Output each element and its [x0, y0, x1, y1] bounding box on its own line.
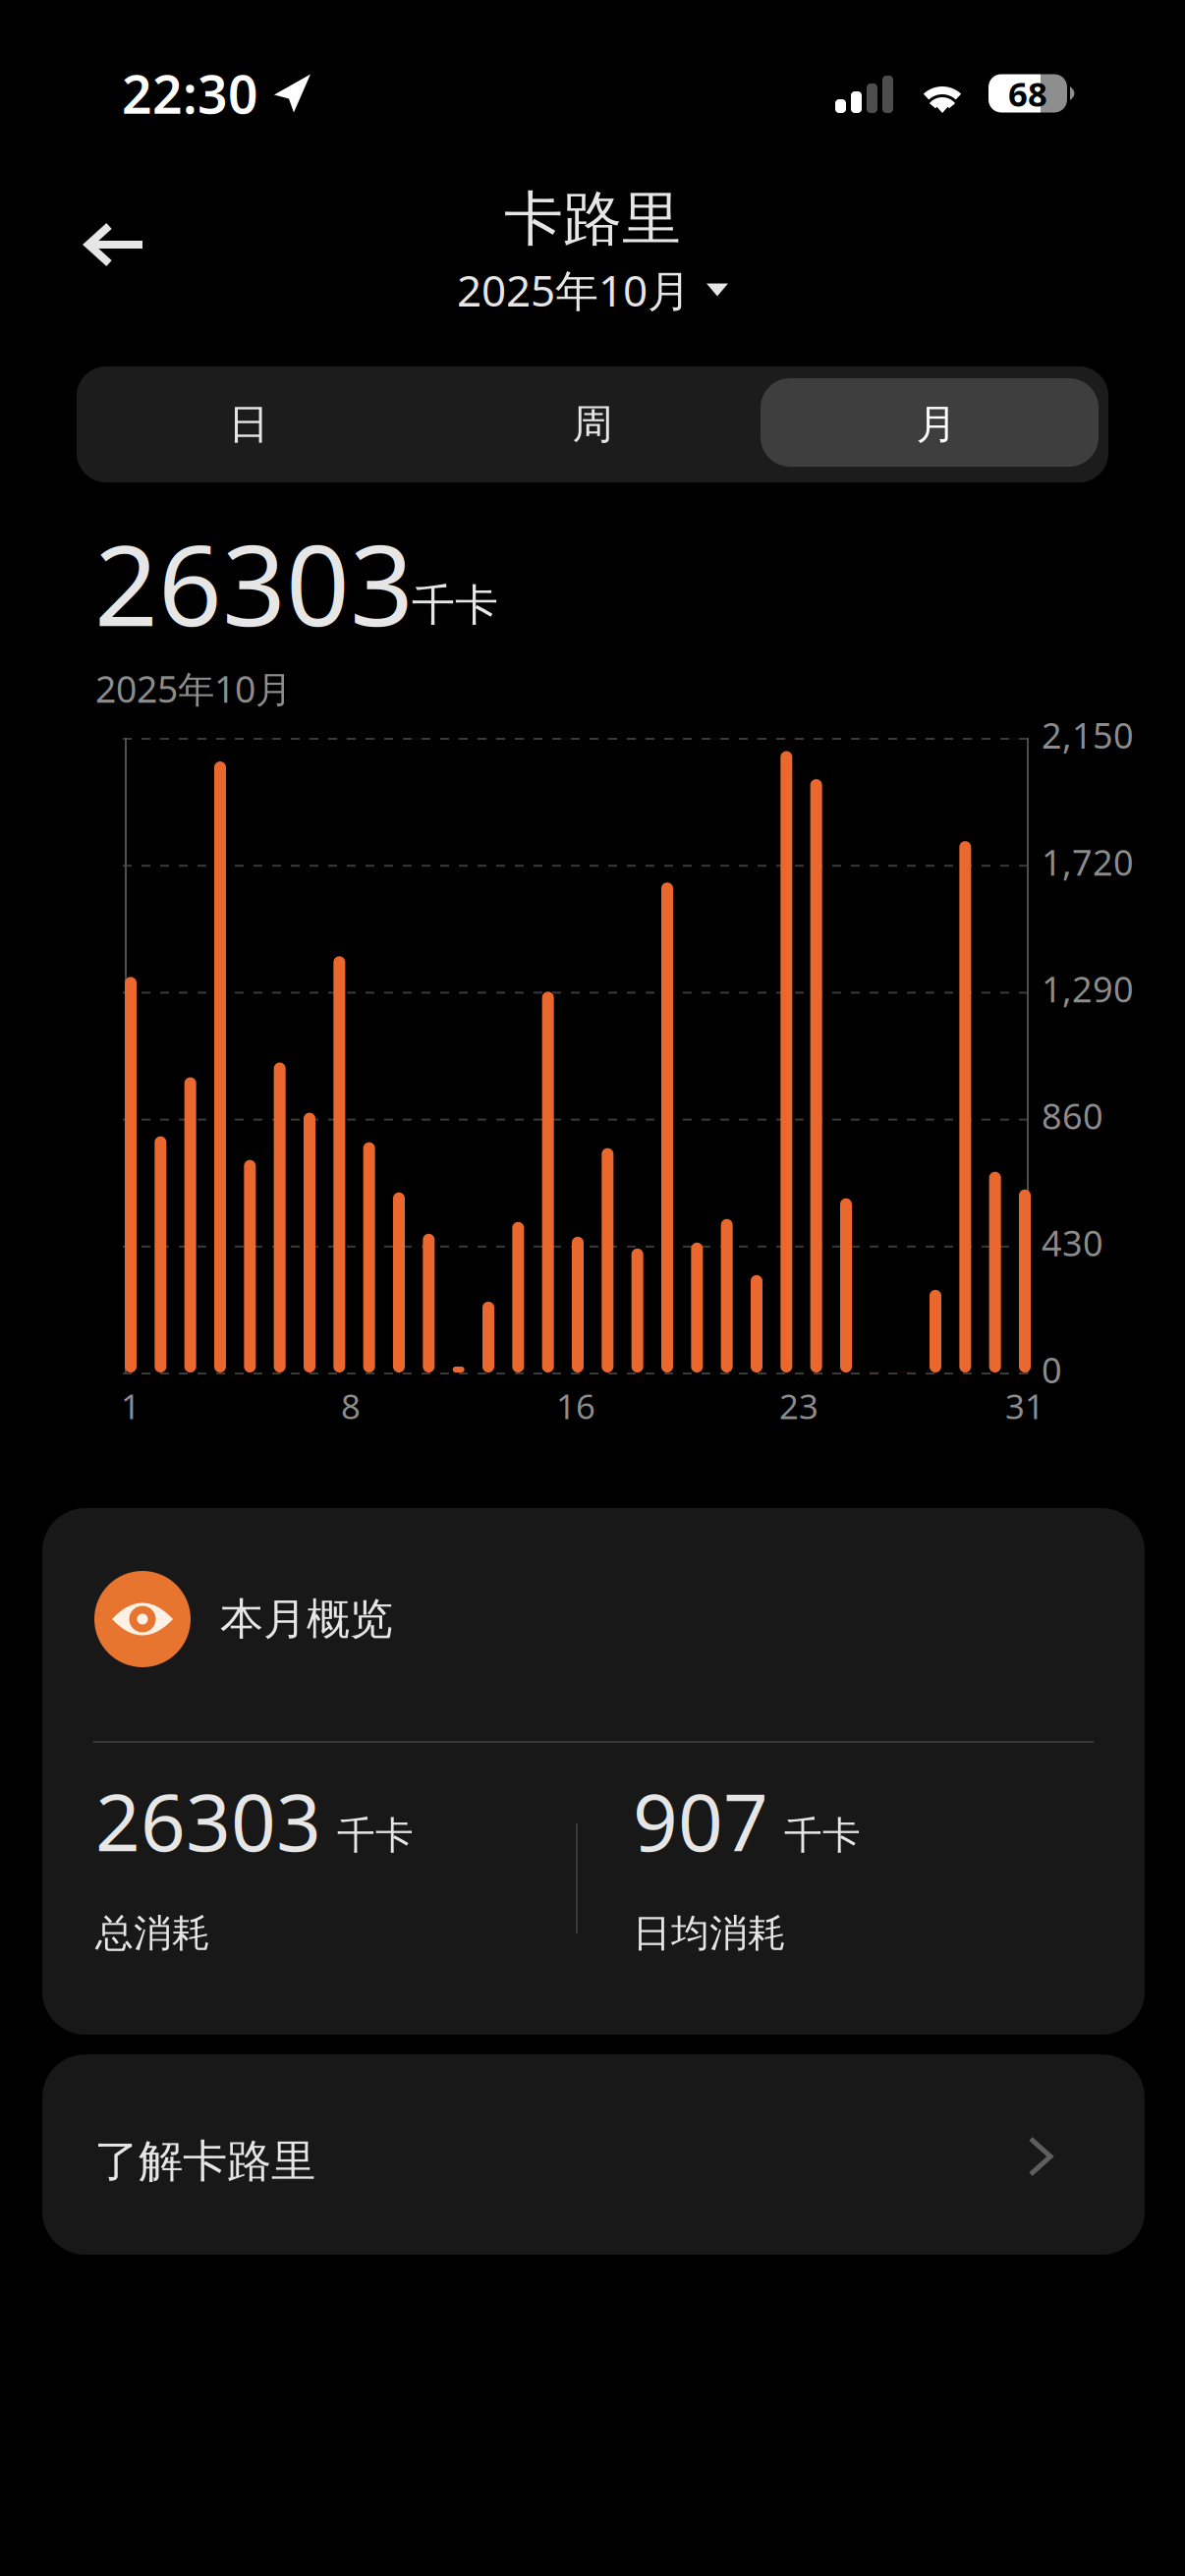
staticText: 16: [556, 1383, 595, 1428]
button[interactable]: 月: [764, 366, 1108, 482]
staticText: 907: [633, 1768, 768, 1873]
staticText: 1: [121, 1383, 141, 1428]
staticText: 2025年10月: [457, 261, 691, 319]
staticText: 1,720: [1042, 838, 1134, 885]
staticText: 千卡: [337, 1812, 414, 1859]
button[interactable]: 了解卡路里: [42, 2054, 1145, 2255]
button[interactable]: Back: [84, 223, 146, 266]
staticText: 总消耗: [95, 1910, 210, 1957]
staticText: 31: [1005, 1383, 1044, 1428]
staticText: 2,150: [1042, 711, 1134, 758]
staticText: 周: [572, 399, 613, 449]
staticText: 26303: [95, 1768, 321, 1873]
staticText: 68: [1008, 71, 1047, 116]
staticText: 月: [916, 399, 957, 449]
button[interactable]: 日: [77, 366, 421, 482]
staticText: 本月概览: [220, 1593, 393, 1646]
staticText: 日均消耗: [633, 1910, 786, 1957]
staticText: 2025年10月: [95, 664, 292, 713]
staticText: 了解卡路里: [94, 2134, 315, 2189]
staticText: 8: [341, 1383, 361, 1428]
staticText: 1,290: [1042, 965, 1134, 1012]
staticText: 0: [1042, 1346, 1062, 1393]
staticText: 26303: [94, 509, 414, 657]
staticText: 23: [779, 1383, 818, 1428]
staticText: 22:30: [122, 59, 258, 128]
button[interactable]: 周: [421, 366, 764, 482]
staticText: 860: [1042, 1092, 1103, 1139]
staticText: 日: [228, 399, 269, 449]
staticText: 卡路里: [504, 183, 681, 255]
staticText: 千卡: [412, 579, 498, 632]
staticText: 430: [1042, 1219, 1103, 1266]
button[interactable]: 2025年10月: [445, 264, 740, 315]
staticText: 千卡: [784, 1812, 861, 1859]
